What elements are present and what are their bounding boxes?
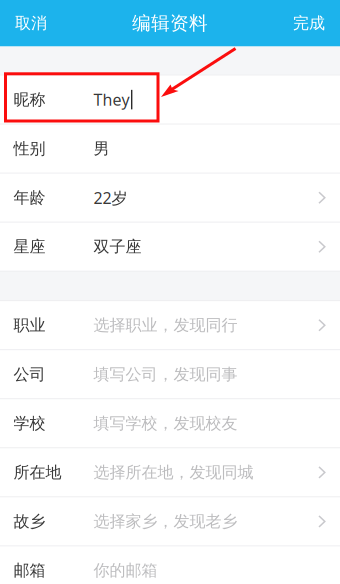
staticText: 22岁: [93, 187, 127, 208]
staticText: 邮箱: [13, 561, 45, 580]
button[interactable]: 年龄: [0, 174, 340, 222]
button[interactable]: 星座: [0, 223, 340, 271]
staticText: 填写公司，发现同事: [93, 364, 237, 384]
staticText: 职业: [13, 315, 45, 335]
staticText: 填写学校，发现校友: [93, 413, 237, 433]
button[interactable]: 故乡: [0, 497, 340, 545]
staticText: 取消: [15, 13, 47, 33]
staticText: 年龄: [13, 188, 45, 208]
button[interactable]: 完成: [281, 0, 340, 46]
button[interactable]: 昵称: [0, 75, 340, 124]
staticText: 公司: [13, 364, 45, 384]
staticText: 故乡: [13, 512, 45, 531]
staticText: 你的邮箱: [93, 561, 157, 580]
staticText: They: [93, 89, 129, 110]
staticText: 学校: [13, 413, 45, 433]
button[interactable]: 所在地: [0, 448, 340, 496]
button[interactable]: 性别: [0, 125, 340, 173]
button[interactable]: 公司: [0, 350, 340, 398]
button[interactable]: 学校: [0, 399, 340, 447]
staticText: 男: [93, 139, 109, 158]
staticText: 选择所在地，发现同城: [93, 463, 253, 482]
staticText: 完成: [293, 13, 325, 33]
staticText: 星座: [13, 237, 45, 257]
staticText: 双子座: [93, 237, 141, 257]
button[interactable]: 职业: [0, 301, 340, 349]
staticText: 选择家乡，发现老乡: [93, 512, 237, 531]
button[interactable]: 取消: [0, 0, 59, 46]
staticText: 编辑资料: [132, 12, 208, 35]
staticText: 昵称: [13, 90, 45, 109]
staticText: 性别: [13, 139, 45, 158]
button[interactable]: 邮箱: [0, 546, 340, 584]
staticText: 所在地: [13, 463, 61, 482]
staticText: 选择职业，发现同行: [93, 315, 237, 335]
